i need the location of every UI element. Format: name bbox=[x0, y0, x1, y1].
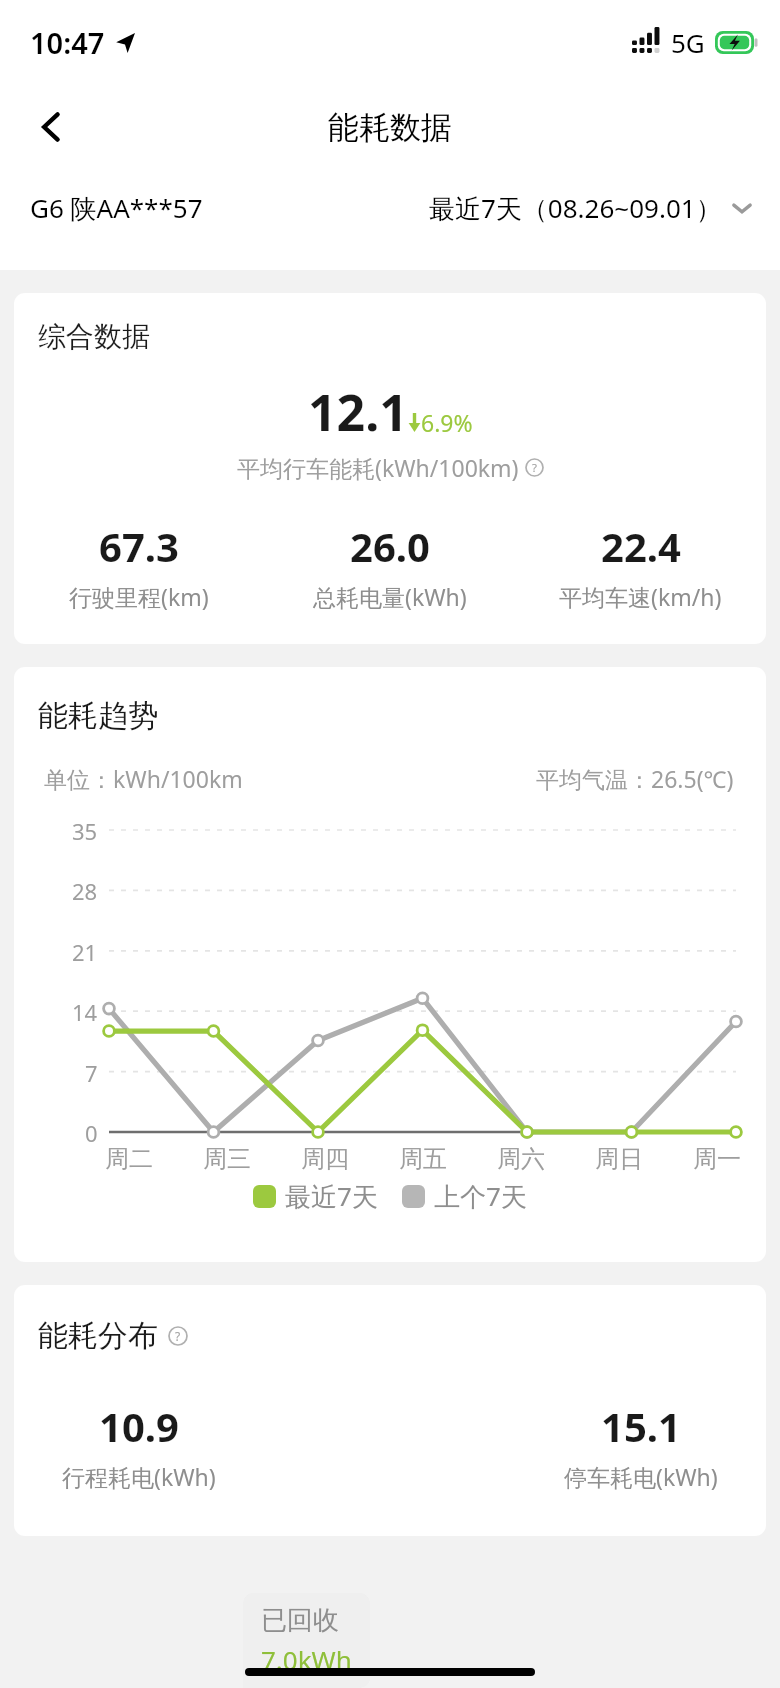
staticText: 能耗分布 bbox=[38, 1317, 158, 1355]
staticText: 周三 bbox=[203, 1144, 251, 1174]
staticText: 平均气温：26.5(℃) bbox=[536, 763, 734, 794]
staticText: 10:47 bbox=[30, 23, 105, 62]
staticText: 14 bbox=[72, 997, 98, 1027]
staticText: 10.9 bbox=[99, 1399, 179, 1453]
button[interactable]: Back bbox=[24, 99, 80, 155]
staticText: 7.0kWh bbox=[261, 1642, 352, 1677]
staticText: 单位：kWh/100km bbox=[44, 763, 243, 794]
staticText: 5G bbox=[671, 25, 705, 60]
staticText: 21 bbox=[72, 937, 98, 967]
staticText: ? bbox=[175, 1328, 181, 1344]
staticText: 35 bbox=[72, 816, 98, 846]
staticText: 平均车速(km/h) bbox=[559, 581, 722, 612]
staticText: 周日 bbox=[595, 1144, 643, 1174]
staticText: 行程耗电(kWh) bbox=[62, 1461, 216, 1492]
staticText: 能耗数据 bbox=[328, 108, 452, 147]
staticText: 15.1 bbox=[601, 1399, 681, 1453]
staticText: 能耗趋势 bbox=[38, 697, 158, 735]
staticText: 总耗电量(kWh) bbox=[313, 581, 467, 612]
staticText: 停车耗电(kWh) bbox=[564, 1461, 718, 1492]
staticText: 已回收 bbox=[261, 1604, 339, 1637]
button[interactable]: 上个7天 bbox=[402, 1178, 527, 1214]
button[interactable]: 最近7天 bbox=[253, 1178, 378, 1214]
staticText: 最近7天 bbox=[285, 1178, 378, 1214]
staticText: 周四 bbox=[301, 1144, 349, 1174]
staticText: 0 bbox=[85, 1118, 98, 1148]
staticText: 行驶里程(km) bbox=[69, 581, 209, 612]
staticText: G6 陕AA***57 bbox=[30, 190, 203, 226]
staticText: 最近7天（08.26~09.01） bbox=[429, 190, 722, 226]
staticText: 综合数据 bbox=[38, 319, 150, 354]
staticText: ? bbox=[532, 460, 537, 476]
staticText: 周二 bbox=[105, 1144, 153, 1174]
staticText: 67.3 bbox=[99, 519, 179, 573]
staticText: 周六 bbox=[497, 1144, 545, 1174]
staticText: 平均行车能耗(kWh/100km) bbox=[237, 452, 519, 483]
staticText: 上个7天 bbox=[434, 1178, 527, 1214]
button[interactable]: 最近7天（08.26~09.01） bbox=[429, 190, 754, 226]
staticText: 28 bbox=[72, 876, 98, 906]
staticText: 26.0 bbox=[350, 519, 430, 573]
staticText: 周一 bbox=[693, 1144, 741, 1174]
staticText: 7 bbox=[85, 1058, 98, 1088]
staticText: 6.9% bbox=[421, 407, 473, 438]
staticText: 12.1 bbox=[308, 378, 408, 446]
staticText: 22.4 bbox=[601, 519, 681, 573]
staticText: 周五 bbox=[399, 1144, 447, 1174]
